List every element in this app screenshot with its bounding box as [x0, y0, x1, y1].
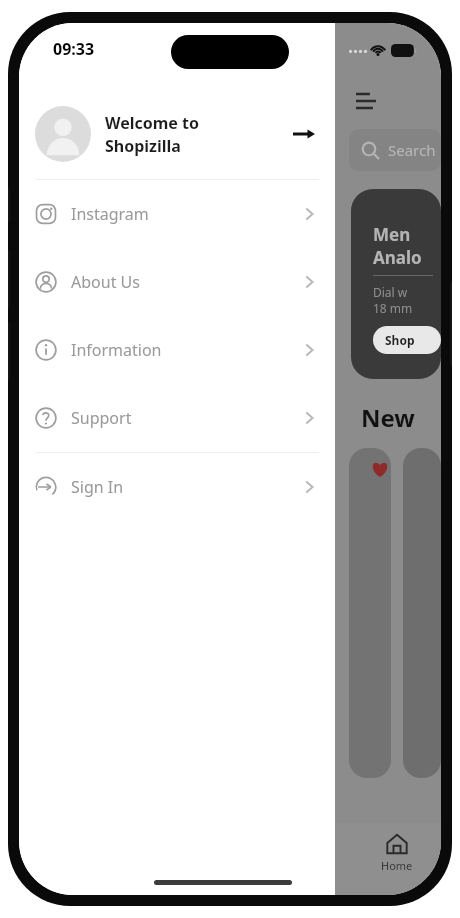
- staticText: 18 mm: [373, 300, 413, 316]
- button[interactable]: Instagram: [19, 180, 335, 248]
- staticText: Welcome to: [105, 112, 199, 134]
- button[interactable]: Men: [351, 189, 441, 379]
- staticText: Men: [373, 223, 411, 246]
- staticText: Information: [71, 339, 162, 361]
- button[interactable]: [403, 448, 441, 778]
- staticText: Search: [388, 140, 436, 160]
- button[interactable]: Welcome to: [19, 101, 335, 167]
- staticText: Shop: [385, 332, 415, 348]
- button[interactable]: Support: [19, 384, 335, 452]
- button[interactable]: Home: [381, 833, 413, 873]
- staticText: New: [361, 401, 415, 434]
- staticText: About Us: [71, 271, 140, 293]
- button[interactable]: About Us: [19, 248, 335, 316]
- staticText: Shopizilla: [105, 135, 181, 157]
- button[interactable]: Sign In: [19, 453, 335, 521]
- button[interactable]: [349, 448, 391, 778]
- staticText: Analo: [373, 246, 422, 269]
- staticText: Support: [71, 407, 132, 429]
- button[interactable]: Search: [349, 129, 441, 171]
- button[interactable]: Shop: [373, 326, 441, 354]
- button[interactable]: Continue: [289, 119, 319, 149]
- button[interactable]: Information: [19, 316, 335, 384]
- staticText: Dial w: [373, 284, 408, 300]
- button[interactable]: Menu: [351, 87, 379, 115]
- staticText: Sign In: [71, 476, 124, 498]
- staticText: 09:33: [53, 38, 95, 60]
- staticText: Instagram: [71, 203, 149, 225]
- staticText: Home: [381, 858, 413, 873]
